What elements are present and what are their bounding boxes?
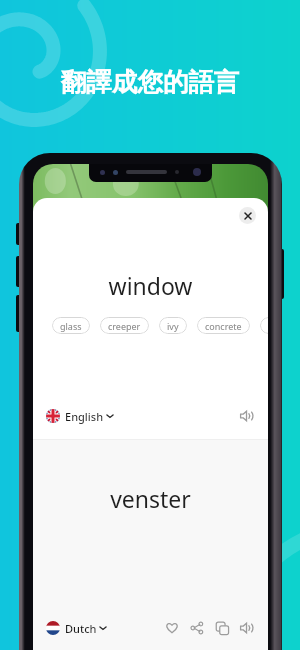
button[interactable]: glass: [52, 317, 90, 334]
staticText: creeper: [108, 320, 141, 332]
staticText: venster: [33, 483, 268, 514]
staticText: concrete: [205, 320, 242, 332]
button[interactable]: paper: [260, 317, 268, 334]
button[interactable]: Play audio: [239, 620, 255, 636]
button[interactable]: Play audio: [239, 408, 255, 424]
button[interactable]: Favourite: [164, 620, 180, 636]
staticText: window: [33, 270, 268, 301]
button[interactable]: creeper: [100, 317, 149, 334]
button[interactable]: Close: [239, 207, 256, 224]
button[interactable]: concrete: [197, 317, 250, 334]
staticText: English: [65, 409, 104, 424]
button[interactable]: Copy: [214, 620, 230, 636]
button[interactable]: ivy: [159, 317, 187, 334]
staticText: glass: [60, 320, 82, 332]
staticText: 翻譯成您的語言: [0, 66, 300, 98]
staticText: Dutch: [65, 621, 97, 636]
button[interactable]: Share: [189, 620, 205, 636]
staticText: ivy: [167, 320, 179, 332]
